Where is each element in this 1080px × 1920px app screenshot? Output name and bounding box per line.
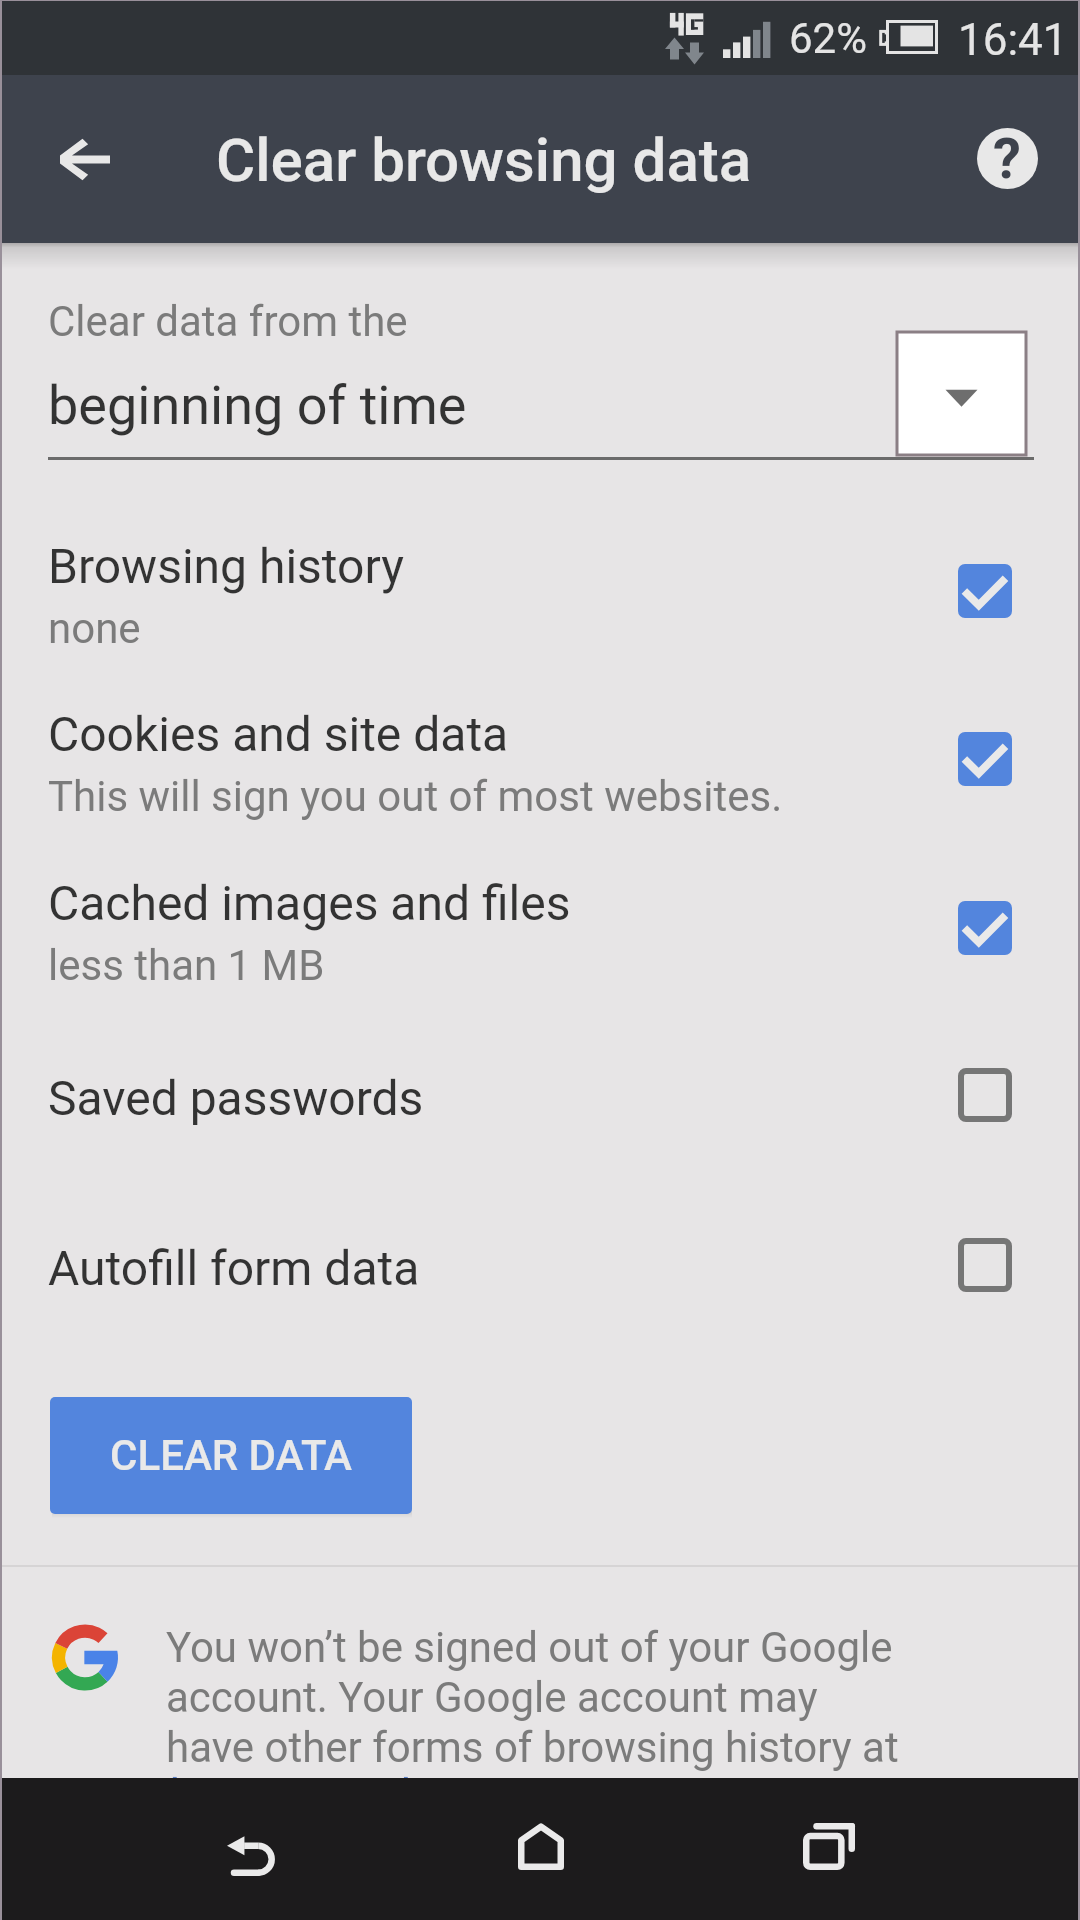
staticText: Saved passwords bbox=[48, 1070, 424, 1126]
button[interactable]: Cookies and site data bbox=[2, 691, 1078, 859]
button[interactable]: Recent apps bbox=[762, 1778, 892, 1918]
button[interactable]: Back bbox=[192, 1778, 322, 1918]
staticText: This will sign you out of most websites. bbox=[48, 772, 783, 821]
staticText: ? bbox=[993, 128, 1021, 187]
button[interactable]: Help bbox=[953, 104, 1061, 212]
button[interactable]: CLEAR DATA bbox=[50, 1397, 412, 1514]
staticText: none bbox=[48, 604, 141, 653]
button[interactable]: Autofill form data bbox=[2, 1225, 1078, 1393]
staticText: Cached images and files bbox=[48, 875, 571, 931]
button[interactable]: Saved passwords bbox=[2, 1055, 1078, 1223]
staticText: Clear browsing data bbox=[216, 125, 752, 195]
staticText: history.google.com bbox=[170, 1770, 528, 1819]
staticText: Browsing history bbox=[48, 538, 404, 594]
button[interactable]: Navigate up bbox=[36, 111, 132, 207]
button[interactable]: Clear data from the beginning of time bbox=[2, 263, 1078, 463]
staticText: less than 1 MB bbox=[48, 941, 325, 990]
button[interactable]: Home bbox=[477, 1778, 607, 1918]
staticText: Autofill form data bbox=[48, 1240, 420, 1296]
button[interactable]: Cached images and files bbox=[2, 860, 1078, 1028]
button[interactable]: Time range bbox=[897, 332, 1026, 455]
staticText: You won’t be signed out of your Google a… bbox=[166, 1623, 906, 1772]
staticText: 16:41 bbox=[958, 14, 1068, 66]
button[interactable]: Browsing history bbox=[2, 523, 1078, 691]
staticText: Cookies and site data bbox=[48, 706, 509, 762]
staticText: beginning of time bbox=[48, 374, 467, 437]
staticText: Clear data from the bbox=[48, 297, 408, 346]
staticText: 62% bbox=[789, 14, 867, 63]
staticText: CLEAR DATA bbox=[110, 1431, 353, 1480]
